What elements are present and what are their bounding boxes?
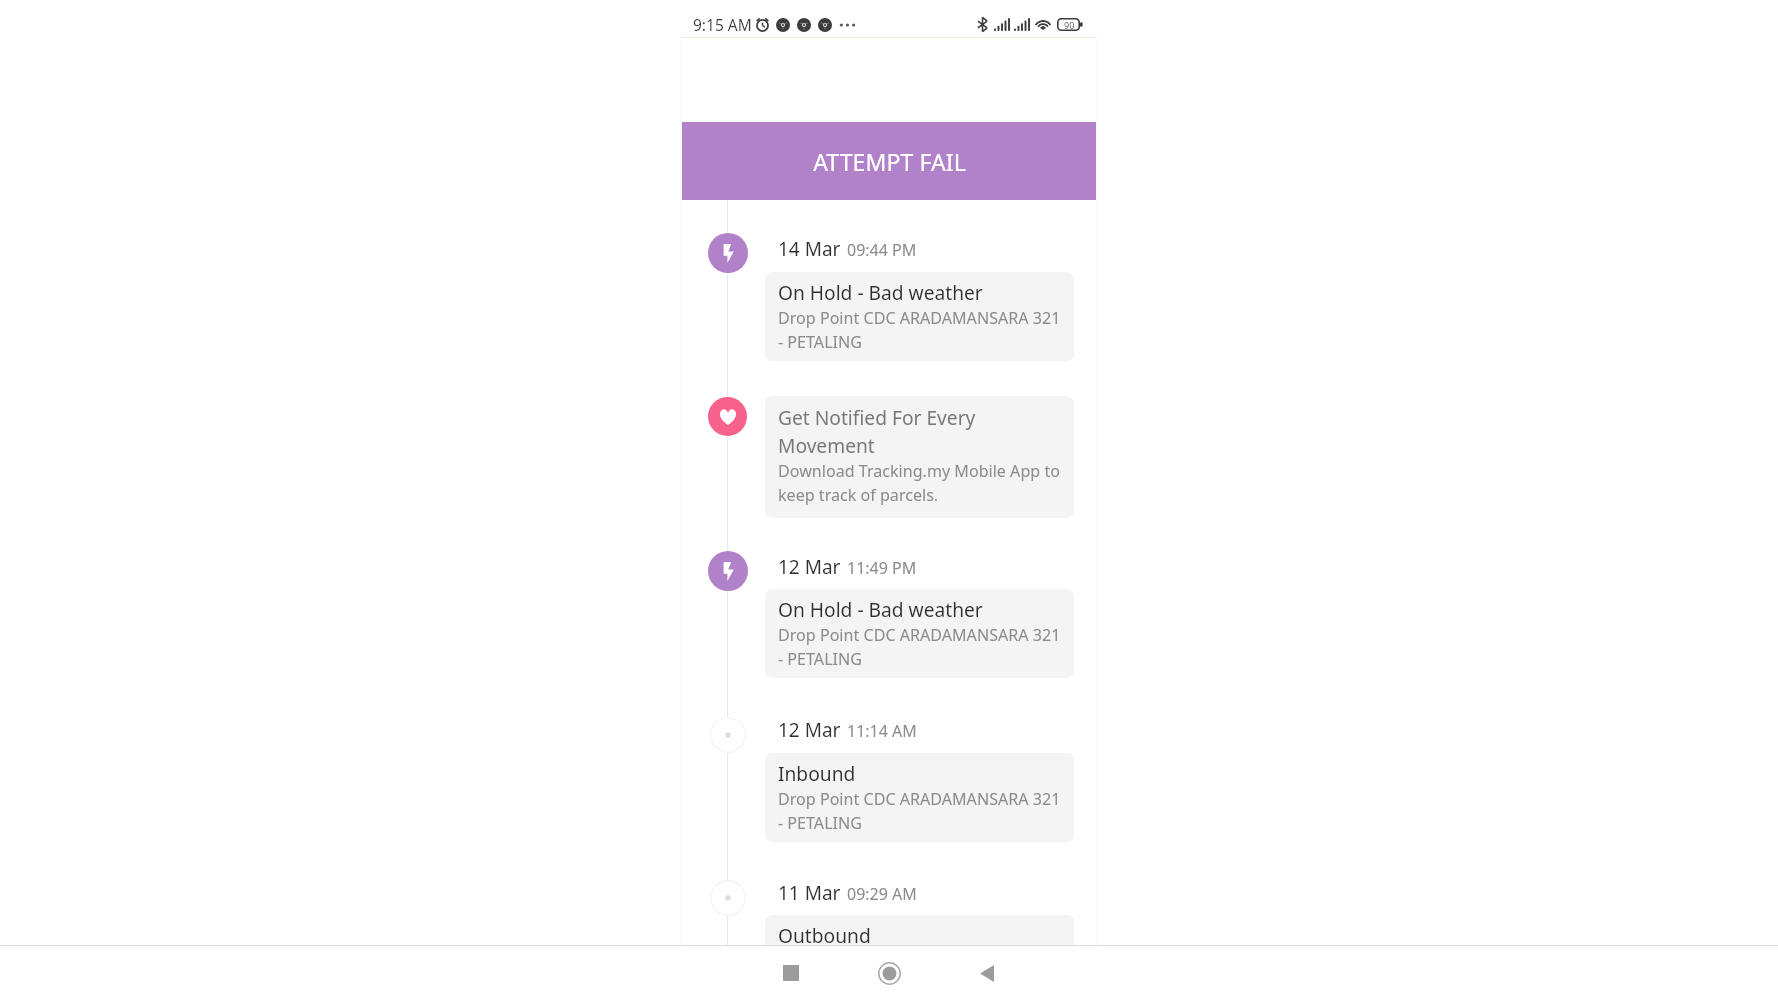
staticText: ATTEMPT FAIL [813, 146, 966, 177]
staticText: Download Tracking.my Mobile App to [778, 460, 1060, 482]
button[interactable]: 12 Mar [778, 717, 917, 743]
button[interactable]: 11 Mar [778, 880, 917, 906]
staticText: Inbound [778, 760, 856, 786]
button[interactable]: Get Notified For Every [765, 396, 1074, 518]
staticText: Drop Point CDC ARADAMANSARA 321 [778, 950, 1061, 972]
button[interactable]: 14 Mar [778, 236, 917, 262]
button[interactable]: On Hold - Bad weather [765, 272, 1074, 361]
staticText: - PETALING [778, 812, 862, 834]
staticText: 9:15 AM [693, 14, 752, 35]
staticText: 11:14 AM [847, 720, 917, 742]
staticText: Drop Point CDC ARADAMANSARA 321 [778, 788, 1061, 810]
button[interactable]: Recent apps [769, 951, 813, 995]
staticText: Drop Point CDC ARADAMANSARA 321 [778, 624, 1061, 646]
staticText: 90 [1064, 19, 1075, 31]
button[interactable]: Status event [710, 880, 746, 916]
staticText: Get Notified For Every [778, 404, 976, 430]
staticText: 11:49 PM [847, 557, 917, 579]
staticText: - PETALING [778, 974, 862, 996]
staticText: - PETALING [778, 648, 862, 670]
staticText: keep track of parcels. [778, 484, 939, 506]
button[interactable]: Home [867, 951, 911, 995]
button[interactable]: On Hold - Bad weather [765, 589, 1074, 678]
staticText: 09:44 PM [847, 239, 917, 261]
button[interactable]: ATTEMPT FAIL [681, 122, 1097, 200]
staticText: - PETALING [778, 331, 862, 353]
staticText: On Hold - Bad weather [778, 279, 983, 305]
button[interactable]: Status event [708, 551, 748, 591]
button[interactable]: Back [965, 951, 1009, 995]
staticText: 14 Mar [778, 236, 841, 262]
staticText: 11 Mar [778, 880, 841, 906]
staticText: 12 Mar [778, 554, 841, 580]
button[interactable]: 12 Mar [778, 554, 917, 580]
staticText: 12 Mar [778, 717, 841, 743]
staticText: Outbound [778, 922, 871, 948]
button[interactable]: Status event [710, 717, 746, 753]
button[interactable]: Promotion [708, 397, 747, 436]
button[interactable]: Inbound [765, 753, 1074, 842]
button[interactable]: Status event [708, 233, 748, 273]
staticText: 09:29 AM [847, 883, 917, 905]
button[interactable]: Outbound [765, 915, 1074, 1000]
staticText: On Hold - Bad weather [778, 596, 983, 622]
staticText: Movement [778, 432, 875, 458]
staticText: Drop Point CDC ARADAMANSARA 321 [778, 307, 1061, 329]
